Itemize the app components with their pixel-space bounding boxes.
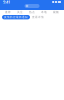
- staticText: 疫情防控最新通知: [4, 16, 28, 19]
- button[interactable]: 视频: [50, 10, 62, 14]
- staticText: 查看详情: [32, 16, 44, 19]
- staticText: 视频: [53, 10, 59, 14]
- button[interactable]: 热点: [26, 10, 38, 14]
- button[interactable]: 本地: [38, 10, 50, 14]
- button[interactable]: 疫情防控最新通知: [2, 15, 30, 19]
- staticText: 关注: [17, 10, 23, 14]
- staticText: 本地: [41, 10, 47, 14]
- button[interactable]: 关注: [14, 10, 26, 14]
- button[interactable]: 搜索: [24, 4, 39, 8]
- button[interactable]: 推荐: [2, 10, 14, 14]
- staticText: 热点: [29, 10, 35, 14]
- staticText: 推荐: [5, 10, 11, 14]
- staticText: 9:41: [3, 0, 10, 5]
